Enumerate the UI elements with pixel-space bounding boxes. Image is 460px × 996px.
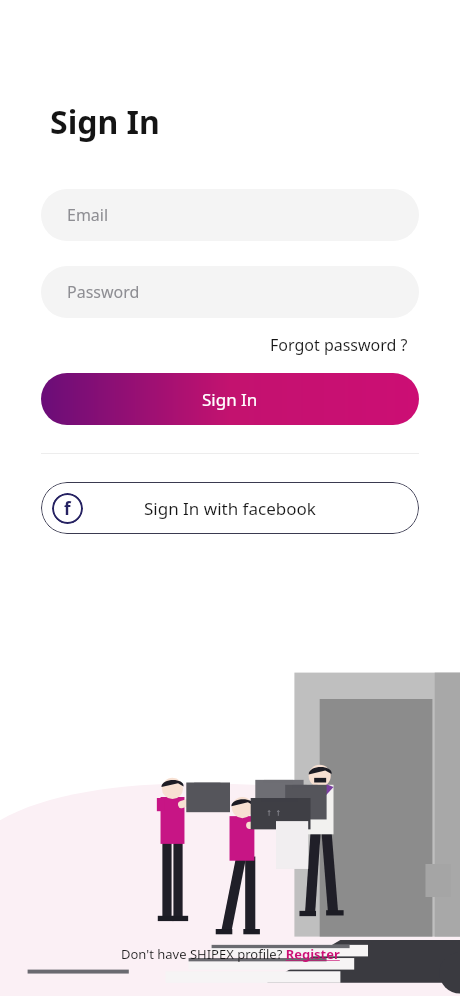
button[interactable]: Forgot password ?: [266, 330, 412, 360]
staticText: Sign In: [202, 388, 258, 411]
staticText: Email: [67, 204, 109, 226]
staticText: f: [64, 497, 71, 520]
staticText: Sign In with facebook: [144, 497, 316, 520]
button[interactable]: Sign In with facebook: [41, 482, 419, 534]
staticText: Sign In: [50, 100, 160, 144]
button[interactable]: Sign In: [41, 373, 419, 425]
button[interactable]: Don't have SHIPEX profile? Register: [121, 945, 340, 963]
button[interactable]: Password: [41, 266, 419, 318]
button[interactable]: Email: [41, 189, 419, 241]
staticText: Don't have SHIPEX profile? Register: [121, 945, 340, 963]
staticText: Forgot password ?: [270, 334, 408, 356]
staticText: Password: [67, 281, 140, 303]
